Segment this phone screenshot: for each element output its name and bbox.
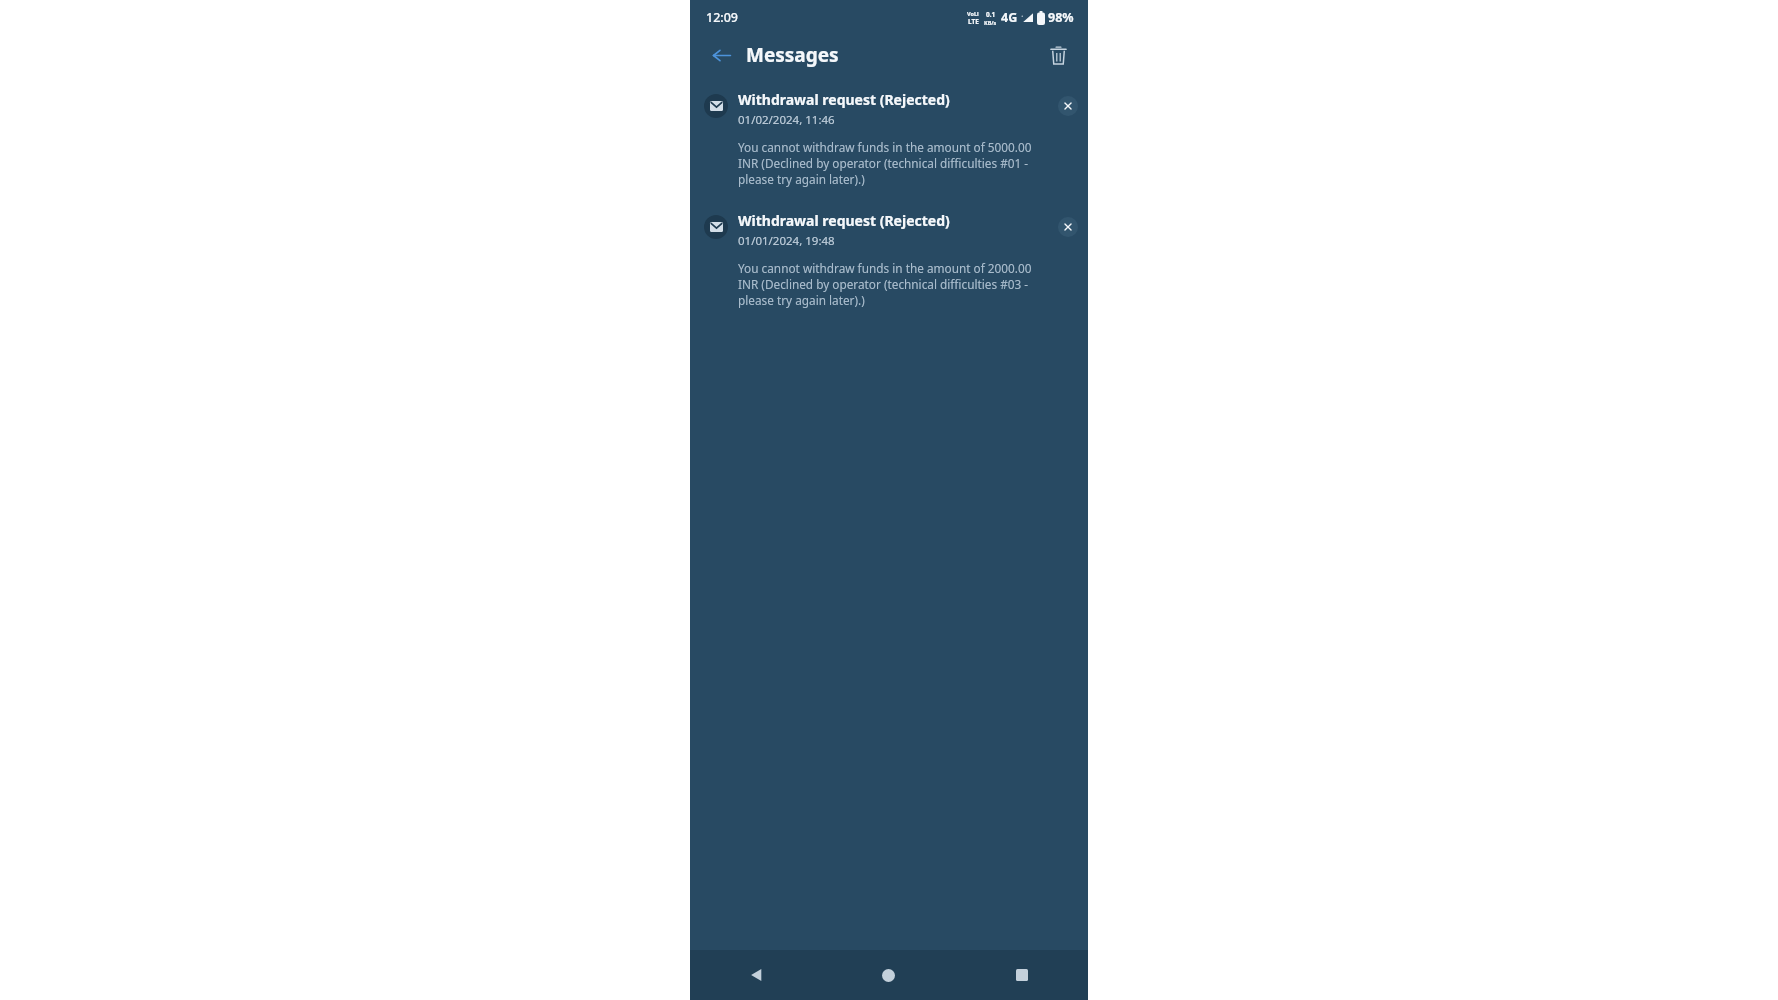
button[interactable]: Back xyxy=(704,38,738,72)
staticText: Withdrawal request (Rejected) xyxy=(738,90,950,109)
staticText: You cannot withdraw funds in the amount … xyxy=(738,260,1054,308)
staticText: 0.1 xyxy=(986,10,996,19)
staticText: 01/02/2024, 11:46 xyxy=(738,112,835,128)
staticText: Messages xyxy=(746,42,839,68)
staticText: 12:09 xyxy=(706,9,739,26)
staticText: LTE xyxy=(968,17,979,26)
button[interactable]: Home xyxy=(822,950,955,1000)
staticText: 01/01/2024, 19:48 xyxy=(738,233,835,249)
staticText: VoLl xyxy=(967,10,979,17)
staticText: KB/s xyxy=(984,19,997,26)
button[interactable]: Dismiss message xyxy=(1058,96,1078,116)
button[interactable]: Withdrawal request (Rejected) xyxy=(690,207,1088,312)
button[interactable]: Back xyxy=(690,950,822,1000)
button[interactable]: Withdrawal request (Rejected) xyxy=(690,86,1088,191)
staticText: 4G xyxy=(1001,9,1018,26)
button[interactable]: Recent apps xyxy=(955,950,1088,1000)
button[interactable]: Dismiss message xyxy=(1058,217,1078,237)
button[interactable]: Delete all messages xyxy=(1040,37,1076,73)
staticText: You cannot withdraw funds in the amount … xyxy=(738,139,1054,187)
staticText: Withdrawal request (Rejected) xyxy=(738,211,950,230)
staticText: 98% xyxy=(1048,9,1074,26)
